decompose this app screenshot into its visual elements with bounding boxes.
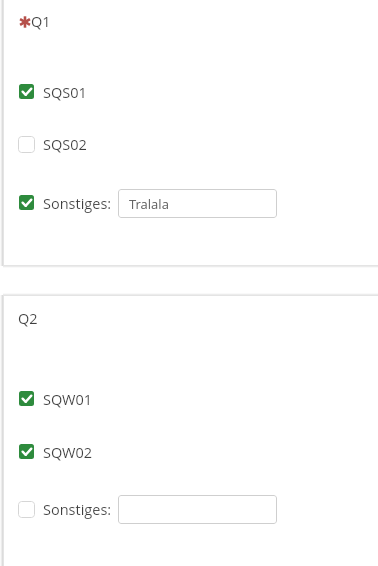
staticText: Sonstiges: (43, 500, 112, 520)
staticText: Sonstiges: (43, 194, 112, 214)
staticText: Tralala (129, 195, 169, 213)
button[interactable]: SQW01 (19, 388, 101, 408)
button[interactable]: SQS01 (19, 81, 95, 101)
staticText: SQW02 (43, 443, 93, 463)
staticText: SQW01 (43, 390, 93, 410)
button[interactable]: Sonstiges: (19, 192, 114, 212)
staticText: Q2 (18, 309, 38, 329)
button[interactable]: SQW02 (19, 441, 101, 461)
button[interactable]: Freitext Sonstiges (118, 495, 277, 524)
button[interactable]: Freitext Sonstiges (118, 189, 277, 218)
button[interactable]: Sonstiges: (19, 498, 114, 518)
button[interactable]: SQS02 (19, 133, 95, 153)
staticText: Q1 (31, 12, 51, 32)
staticText: SQS02 (43, 135, 87, 155)
staticText: SQS01 (43, 83, 87, 103)
